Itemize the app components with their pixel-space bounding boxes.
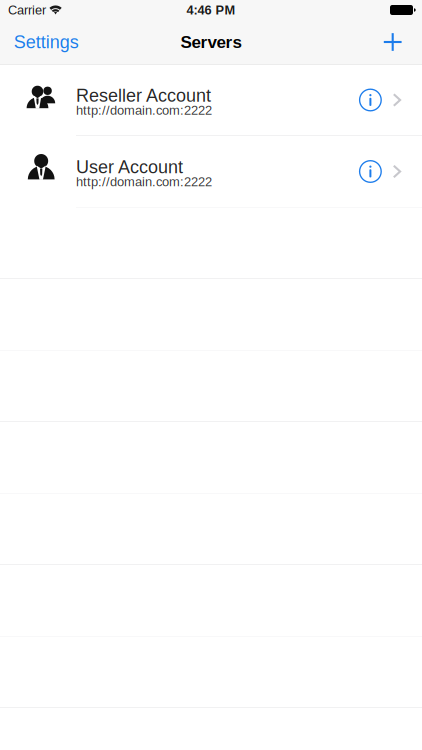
staticText: 4:46 PM — [186, 3, 235, 17]
staticText: Carrier — [8, 3, 46, 17]
staticText: Servers — [180, 32, 241, 52]
staticText: Settings — [14, 32, 79, 52]
staticText: User Account — [76, 157, 183, 177]
button[interactable]: Add server — [363, 20, 422, 64]
button[interactable]: More info — [359, 89, 381, 111]
button[interactable]: Reseller Account — [0, 64, 422, 136]
button[interactable]: More info — [359, 160, 381, 183]
staticText: http://domain.com:2222 — [76, 103, 212, 117]
button[interactable]: User Account — [0, 136, 422, 207]
button[interactable]: Settings — [0, 20, 93, 64]
staticText: http://domain.com:2222 — [76, 175, 212, 189]
staticText: Reseller Account — [76, 85, 211, 105]
